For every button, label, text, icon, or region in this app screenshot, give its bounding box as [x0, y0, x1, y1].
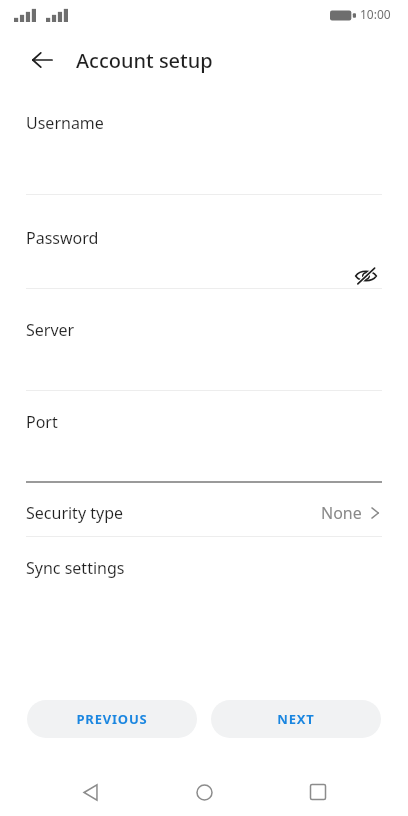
button[interactable]: NEXT [211, 700, 381, 738]
staticText: Account setup [76, 47, 213, 74]
staticText: Sync settings [26, 557, 125, 579]
button[interactable]: Server [0, 319, 408, 341]
button[interactable]: Username [0, 112, 408, 134]
button[interactable]: Recent apps [294, 768, 342, 816]
staticText: Username [26, 112, 104, 134]
staticText: Password [26, 227, 99, 249]
button[interactable]: Security type [0, 490, 408, 536]
button[interactable]: Port [0, 411, 408, 433]
staticText: 10:00 [360, 6, 391, 22]
button[interactable]: Home [180, 768, 228, 816]
button[interactable]: Show password [342, 252, 390, 300]
button[interactable]: Password [0, 227, 408, 249]
staticText: NEXT [277, 710, 315, 728]
button[interactable]: Back [16, 34, 68, 86]
staticText: Security type [26, 502, 124, 524]
staticText: Port [26, 411, 58, 433]
staticText: Server [26, 319, 75, 341]
button[interactable]: Back [66, 768, 114, 816]
staticText: PREVIOUS [76, 710, 148, 728]
button[interactable]: Sync settings [0, 545, 408, 591]
button[interactable]: PREVIOUS [27, 700, 197, 738]
staticText: None [321, 502, 362, 524]
